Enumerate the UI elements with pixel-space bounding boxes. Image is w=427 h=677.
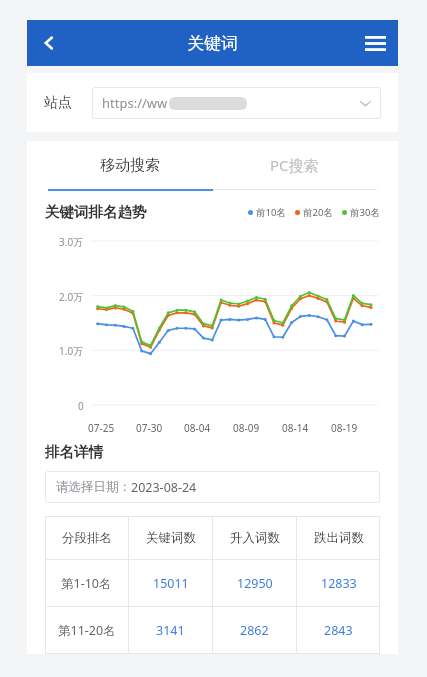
staticText: 2843	[324, 622, 353, 639]
button[interactable]: Menu	[352, 20, 398, 66]
staticText: 15011	[153, 575, 189, 592]
staticText: 站点	[44, 94, 72, 112]
button[interactable]: 移动搜索	[48, 141, 212, 189]
staticText: 跌出词数	[314, 530, 364, 546]
staticText: 第1-10名	[61, 575, 112, 592]
staticText: 分段排名	[62, 530, 112, 546]
staticText: 请选择日期：	[56, 479, 131, 495]
staticText: 0	[78, 399, 84, 413]
staticText: 关键词	[187, 33, 238, 54]
staticText: 关键词排名趋势	[45, 203, 147, 221]
staticText: 升入词数	[230, 530, 280, 546]
staticText: 12950	[237, 575, 273, 592]
button[interactable]: https://ww	[92, 87, 381, 119]
staticText: https://ww	[102, 94, 168, 112]
staticText: 前10名	[256, 206, 286, 219]
staticText: 1.0万	[59, 344, 84, 358]
staticText: PC搜索	[270, 155, 319, 175]
button[interactable]: 第11-20名	[45, 607, 380, 653]
staticText: 第11-20名	[58, 622, 116, 639]
staticText: 排名详情	[45, 443, 103, 461]
staticText: 08-19	[331, 421, 358, 435]
staticText: 08-14	[282, 421, 309, 435]
staticText: 关键词数	[146, 530, 196, 546]
staticText: 08-04	[184, 421, 211, 435]
staticText: 前20名	[303, 206, 333, 219]
staticText: 08-09	[233, 421, 260, 435]
staticText: 2862	[240, 622, 269, 639]
button[interactable]: 第1-10名	[45, 560, 380, 606]
staticText: 2.0万	[59, 290, 84, 304]
staticText: 07-25	[88, 421, 115, 435]
staticText: 2023-08-24	[131, 479, 197, 496]
button[interactable]: Back	[27, 21, 71, 65]
button[interactable]: PC搜索	[212, 141, 377, 189]
staticText: 3141	[156, 622, 185, 639]
staticText: 12833	[321, 575, 357, 592]
staticText: 前30名	[350, 206, 380, 219]
button[interactable]: 请选择日期：	[45, 471, 380, 503]
staticText: 移动搜索	[100, 156, 160, 175]
staticText: 07-30	[136, 421, 163, 435]
staticText: 3.0万	[59, 235, 84, 249]
